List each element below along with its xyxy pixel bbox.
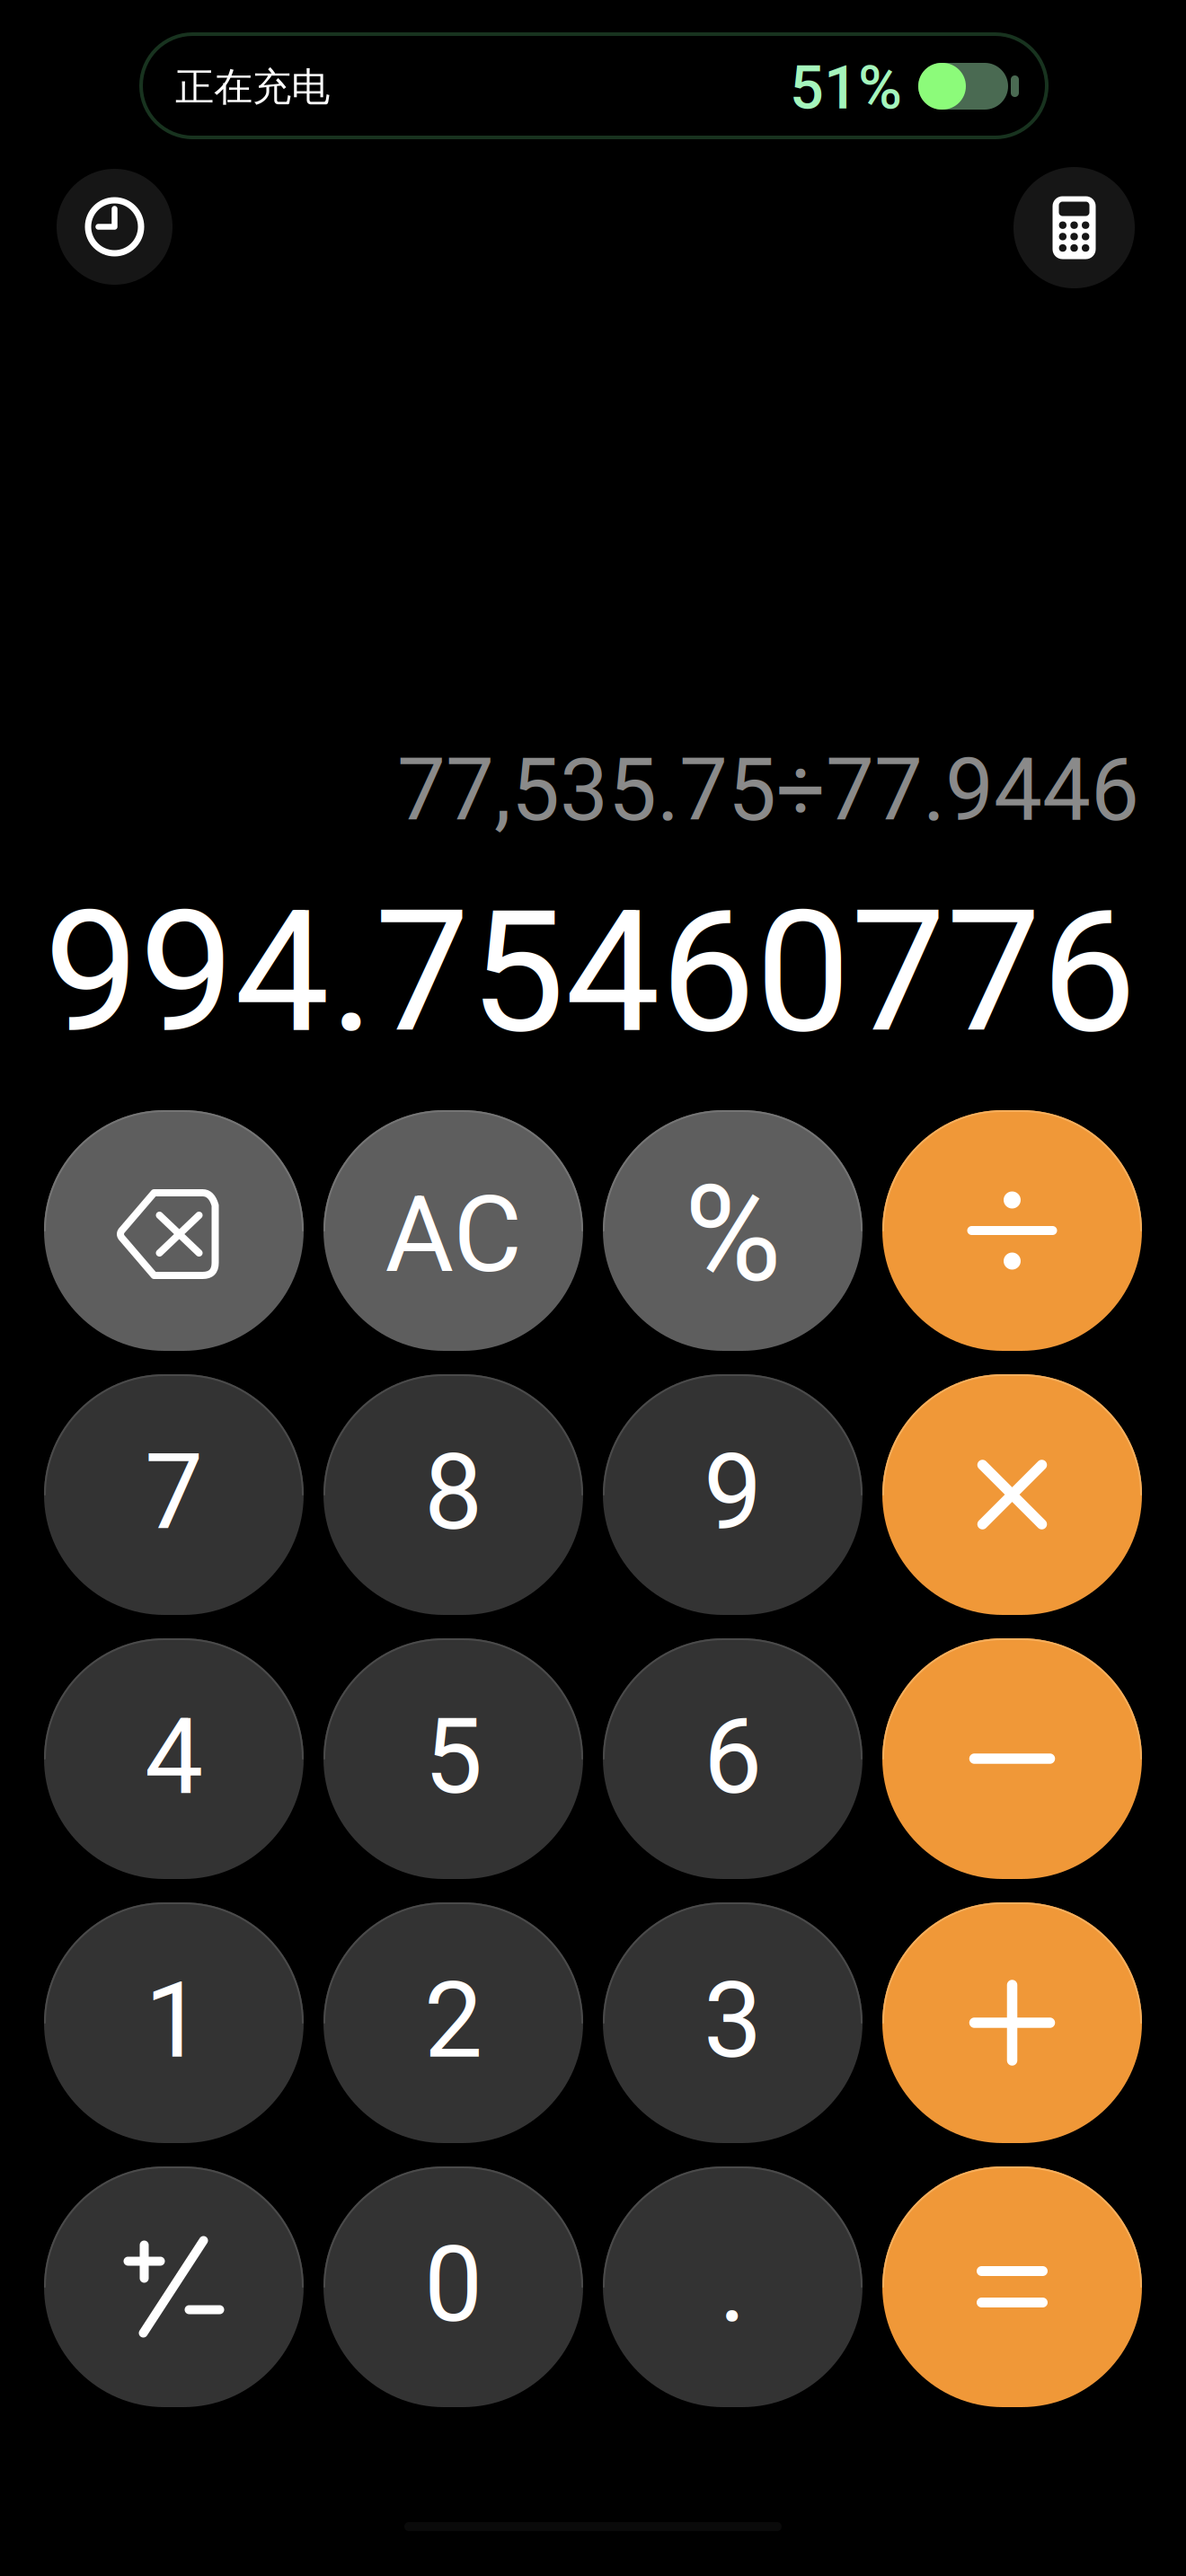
button[interactable]: 6 [603,1638,863,1879]
staticText: 77,535.75÷77.9446 [397,740,1139,841]
button[interactable]: 7 [44,1374,304,1615]
button[interactable]: Divide [882,1110,1142,1351]
staticText: 6 [704,1696,762,1818]
button[interactable]: AC [323,1110,583,1351]
staticText: 994.75460776 [44,873,1137,1071]
button[interactable]: Minus [882,1638,1142,1879]
staticText: . [719,2224,747,2346]
staticText: 7 [145,1432,203,1554]
staticText: 9 [704,1432,762,1554]
button[interactable]: Plus [882,1902,1142,2143]
staticText: 0 [424,2224,482,2346]
button[interactable]: Backspace [44,1110,304,1351]
staticText: AC [385,1173,522,1297]
button[interactable]: 0 [323,2166,583,2407]
staticText: 8 [424,1432,482,1554]
staticText: % [684,1156,781,1312]
staticText: 4 [145,1696,203,1818]
staticText: 正在充电 [175,63,330,112]
button[interactable]: . [603,2166,863,2407]
button[interactable]: 8 [323,1374,583,1615]
button[interactable]: % [603,1110,863,1351]
button[interactable]: Plus minus [44,2166,304,2407]
staticText: 5 [424,1696,482,1818]
staticText: 3 [704,1960,762,2082]
button[interactable]: History [57,169,173,285]
button[interactable]: 9 [603,1374,863,1615]
button[interactable]: 5 [323,1638,583,1879]
staticText: 1 [145,1960,203,2082]
button[interactable]: Calculator mode [1013,167,1135,288]
button[interactable]: 2 [323,1902,583,2143]
button[interactable]: Equals [882,2166,1142,2407]
staticText: 2 [424,1960,482,2082]
staticText: 51% [790,53,902,123]
button[interactable]: 3 [603,1902,863,2143]
button[interactable]: 1 [44,1902,304,2143]
button[interactable]: 4 [44,1638,304,1879]
button[interactable]: Multiply [882,1374,1142,1615]
